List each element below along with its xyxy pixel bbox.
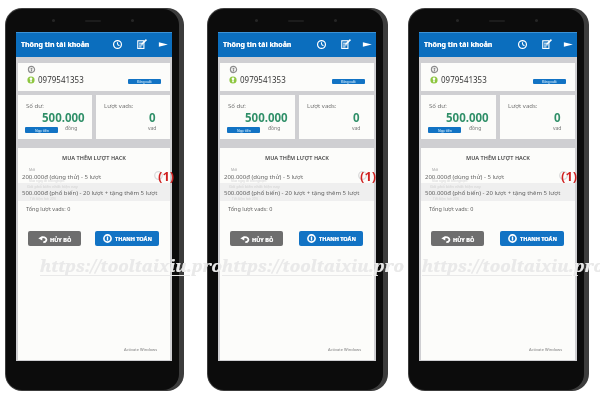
staticText: 0979541353 xyxy=(38,74,84,85)
staticText: Mua ngay để trải nghiệm xyxy=(432,179,468,183)
button[interactable]: Logout xyxy=(157,38,170,51)
staticText: Tổng lượt vads: 0 xyxy=(228,205,273,212)
staticText: 200.000đ (dùng thử) - 5 lượt xyxy=(425,173,505,181)
button[interactable]: THANH TOÁN xyxy=(500,231,564,246)
staticText: 500.000đ (phổ biến) - 20 lượt + tặng thê… xyxy=(425,189,561,197)
staticText: Mới xyxy=(231,167,238,172)
staticText: HỦY BỎ xyxy=(453,236,475,243)
button[interactable]: Đăng xuất xyxy=(332,79,365,84)
staticText: HỦY BỎ xyxy=(252,236,274,243)
staticText: Mua ngay để trải nghiệm xyxy=(231,179,267,183)
staticText: Thông tin tài khoản xyxy=(21,40,90,50)
staticText: 0979541353 xyxy=(240,74,286,85)
staticText: Thông tin tài khoản xyxy=(424,40,493,50)
button[interactable]: THANH TOÁN xyxy=(95,231,159,246)
staticText: Activate Windows xyxy=(328,347,362,352)
button[interactable]: HỦY BỎ xyxy=(28,231,81,246)
staticText: Nạp tiền xyxy=(35,128,49,133)
staticText: Activate Windows xyxy=(124,347,158,352)
staticText: 200.000đ (dùng thử) - 5 lượt xyxy=(224,173,304,181)
staticText: Đăng xuất xyxy=(341,80,356,84)
staticText: 0 xyxy=(353,110,360,126)
staticText: (1) xyxy=(360,167,377,185)
staticText: vad xyxy=(553,125,562,132)
button[interactable]: 200.000đ (dùng thử) - 5 lượt xyxy=(18,167,170,183)
button[interactable]: Logout xyxy=(562,38,575,51)
button[interactable]: 200.000đ (dùng thử) - 5 lượt xyxy=(421,167,575,183)
staticText: đồng xyxy=(469,125,482,132)
staticText: Tổng lượt vads: 0 xyxy=(26,205,71,212)
button[interactable]: Logout xyxy=(361,38,374,51)
staticText: Số dư: xyxy=(26,102,44,110)
staticText: Lượt vads: xyxy=(104,102,134,110)
staticText: Tiết kiệm hơn 20% xyxy=(232,197,258,201)
staticText: 0 xyxy=(149,110,156,126)
button[interactable]: HỦY BỎ xyxy=(230,231,283,246)
staticText: 200.000đ (dùng thử) - 5 lượt xyxy=(22,173,102,181)
button[interactable]: 500.000đ (phổ biến) - 20 lượt + tặng thê… xyxy=(220,183,374,201)
staticText: THANH TOÁN xyxy=(319,235,356,242)
button[interactable]: 200.000đ (dùng thử) - 5 lượt xyxy=(220,167,374,183)
staticText: HỦY BỎ xyxy=(50,236,72,243)
staticText: Lượt vads: xyxy=(307,102,337,110)
staticText: 500.000đ (phổ biến) - 20 lượt + tặng thê… xyxy=(22,189,158,197)
staticText: THANH TOÁN xyxy=(520,235,557,242)
staticText: https://tooltaixiu.pro xyxy=(222,254,405,277)
button[interactable]: History xyxy=(516,38,529,51)
staticText: 500.000 xyxy=(42,110,85,126)
staticText: 0979541353 xyxy=(441,74,487,85)
staticText: Mới xyxy=(29,167,36,172)
button[interactable]: History xyxy=(315,38,328,51)
staticText: Tiết kiệm hơn 20% xyxy=(433,197,459,201)
staticText: Gói phổ biến nhất hiện nay xyxy=(27,184,78,189)
staticText: (1) xyxy=(158,167,175,185)
staticText: vad xyxy=(148,125,157,132)
button[interactable]: 500.000đ (phổ biến) - 20 lượt + tặng thê… xyxy=(421,183,575,201)
staticText: Activate Windows xyxy=(529,347,563,352)
staticText: Mua ngay để trải nghiệm xyxy=(29,179,65,183)
staticText: Nạp tiền xyxy=(438,128,452,133)
staticText: Đăng xuất xyxy=(137,80,152,84)
staticText: vad xyxy=(352,125,361,132)
staticText: Tổng lượt vads: 0 xyxy=(429,205,474,212)
staticText: Gói phổ biến nhất hiện nay xyxy=(229,184,280,189)
staticText: https://tooltaixiu.pro xyxy=(40,254,223,277)
staticText: Gói phổ biến nhất hiện nay xyxy=(430,184,481,189)
staticText: Lượt vads: xyxy=(508,102,538,110)
staticText: Tiết kiệm hơn 20% xyxy=(30,197,56,201)
staticText: MUA THÊM LƯỢT HACK xyxy=(220,154,374,161)
button[interactable]: History xyxy=(111,38,124,51)
staticText: Số dư: xyxy=(228,102,246,110)
staticText: MUA THÊM LƯỢT HACK xyxy=(18,154,170,161)
staticText: MUA THÊM LƯỢT HACK xyxy=(421,154,575,161)
button[interactable]: 500.000đ (phổ biến) - 20 lượt + tặng thê… xyxy=(18,183,170,201)
staticText: (1) xyxy=(561,167,578,185)
staticText: Đăng xuất xyxy=(542,80,557,84)
button[interactable]: Notes xyxy=(540,38,553,51)
button[interactable]: THANH TOÁN xyxy=(299,231,363,246)
staticText: Số dư: xyxy=(429,102,447,110)
button[interactable]: Đăng xuất xyxy=(533,79,566,84)
staticText: 500.000 xyxy=(446,110,489,126)
staticText: THANH TOÁN xyxy=(115,235,152,242)
staticText: Mới xyxy=(432,167,439,172)
button[interactable]: Đăng xuất xyxy=(128,79,161,84)
button[interactable]: Nạp tiền xyxy=(227,127,260,133)
button[interactable]: Notes xyxy=(339,38,352,51)
staticText: đồng xyxy=(65,125,78,132)
staticText: 500.000 xyxy=(245,110,288,126)
button[interactable]: Nạp tiền xyxy=(25,127,58,133)
staticText: 500.000đ (phổ biến) - 20 lượt + tặng thê… xyxy=(224,189,360,197)
button[interactable]: HỦY BỎ xyxy=(431,231,484,246)
button[interactable]: Nạp tiền xyxy=(428,127,461,133)
staticText: Thông tin tài khoản xyxy=(223,40,292,50)
staticText: đồng xyxy=(268,125,281,132)
staticText: 0 xyxy=(554,110,561,126)
staticText: Nạp tiền xyxy=(237,128,251,133)
button[interactable]: Notes xyxy=(135,38,148,51)
staticText: https://tooltaixiu.pro xyxy=(422,254,600,277)
